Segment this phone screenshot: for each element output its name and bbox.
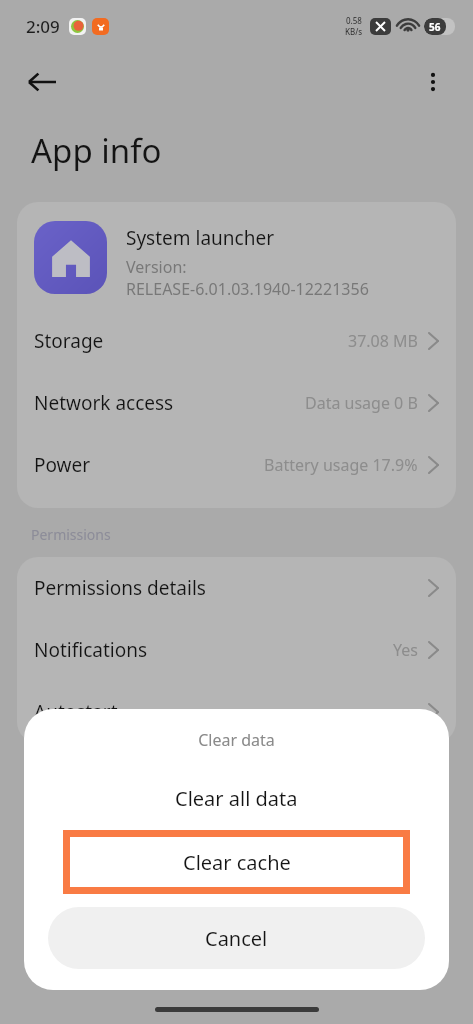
button[interactable]: Storage bbox=[17, 310, 456, 372]
staticText: Battery usage 17.9% bbox=[264, 454, 418, 476]
button[interactable]: More options bbox=[407, 56, 459, 108]
button[interactable]: Autostart bbox=[17, 681, 456, 743]
staticText: Autostart bbox=[34, 699, 118, 725]
staticText: Version: bbox=[126, 256, 187, 278]
staticText: Permissions details bbox=[34, 575, 206, 601]
button[interactable]: Notifications bbox=[17, 619, 456, 681]
staticText: KB/s bbox=[345, 26, 363, 37]
staticText: Notifications bbox=[34, 637, 148, 663]
staticText: System launcher bbox=[126, 225, 274, 251]
staticText: 2:09 bbox=[26, 15, 60, 38]
staticText: 0.58 bbox=[346, 15, 362, 26]
staticText: Clear cache bbox=[183, 849, 291, 876]
staticText: Clear all data bbox=[175, 785, 298, 812]
staticText: Cancel bbox=[205, 925, 268, 952]
staticText: Network access bbox=[34, 390, 174, 416]
staticText: Yes bbox=[393, 639, 418, 661]
staticText: Permissions bbox=[31, 525, 111, 544]
staticText: 56 bbox=[429, 20, 441, 34]
button[interactable]: Cancel bbox=[48, 907, 425, 969]
staticText: App info bbox=[31, 128, 162, 173]
button[interactable]: Clear all data bbox=[24, 774, 449, 822]
staticText: Power bbox=[34, 452, 91, 478]
button[interactable]: Network access bbox=[17, 372, 456, 434]
button[interactable]: Back bbox=[14, 54, 70, 110]
staticText: RELEASE-6.01.03.1940-12221356 bbox=[126, 278, 369, 300]
staticText: Storage bbox=[34, 328, 104, 354]
staticText: 37.08 MB bbox=[348, 330, 418, 352]
button[interactable]: Permissions details bbox=[17, 557, 456, 619]
button[interactable]: Clear cache bbox=[70, 837, 403, 887]
staticText: Clear data bbox=[24, 729, 449, 751]
button[interactable]: Power bbox=[17, 434, 456, 496]
staticText: Data usage 0 B bbox=[305, 392, 418, 414]
